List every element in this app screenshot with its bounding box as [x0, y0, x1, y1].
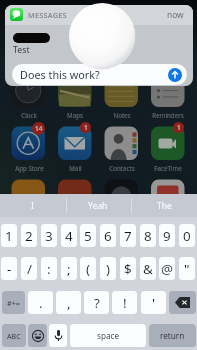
- staticText: Contacts: [109, 164, 135, 172]
- button[interactable]: &: [140, 257, 156, 280]
- button[interactable]: MESSAGES: [5, 5, 193, 86]
- button[interactable]: 4: [61, 224, 77, 247]
- staticText: 1: [177, 123, 181, 132]
- staticText: 3: [45, 227, 53, 245]
- staticText: now: [167, 9, 184, 20]
- button[interactable]: .: [28, 291, 53, 314]
- button[interactable]: 3: [41, 224, 57, 247]
- staticText: .: [39, 294, 43, 312]
- button[interactable]: Does this work?: [12, 64, 187, 85]
- staticText: 0: [183, 227, 191, 245]
- staticText: ,: [67, 294, 71, 312]
- button[interactable]: Backspace: [169, 291, 196, 314]
- staticText: #+=: [7, 298, 20, 308]
- button[interactable]: ": [179, 257, 195, 280]
- button[interactable]: Symbols: [2, 291, 25, 314]
- staticText: :: [47, 260, 51, 278]
- staticText: 14: [35, 124, 43, 133]
- button[interactable]: ABC: [2, 324, 26, 347]
- button[interactable]: Dictation: [49, 324, 67, 347]
- staticText: Test: [13, 44, 30, 56]
- staticText: Reminders: [152, 111, 184, 119]
- button[interactable]: ): [100, 257, 116, 280]
- staticText: 5: [84, 227, 92, 245]
- button[interactable]: 2: [21, 224, 37, 247]
- staticText: Notes: [113, 111, 131, 119]
- button[interactable]: (: [80, 257, 96, 280]
- button[interactable]: 5: [80, 224, 96, 247]
- button[interactable]: !: [112, 291, 137, 314]
- staticText: 1: [5, 227, 13, 245]
- staticText: 7: [124, 227, 132, 245]
- button[interactable]: Emoji: [28, 324, 47, 347]
- button[interactable]: Yeah: [65, 194, 131, 217]
- staticText: Mail: [69, 164, 82, 172]
- staticText: (: [86, 260, 91, 278]
- button[interactable]: The: [131, 194, 197, 217]
- staticText: @: [161, 260, 174, 278]
- staticText: 6: [104, 227, 112, 245]
- staticText: space: [97, 330, 120, 341]
- staticText: Clock: [21, 111, 37, 119]
- staticText: 2: [25, 227, 33, 245]
- button[interactable]: space: [70, 324, 146, 347]
- button[interactable]: -: [1, 257, 17, 280]
- staticText: MESSAGES: [28, 10, 67, 20]
- staticText: Yeah: [88, 200, 108, 212]
- staticText: 8: [144, 227, 152, 245]
- staticText: Does this work?: [20, 67, 100, 82]
- staticText: !: [123, 294, 127, 312]
- button[interactable]: Send: [168, 68, 182, 82]
- staticText: ?: [94, 294, 100, 312]
- button[interactable]: 6: [100, 224, 116, 247]
- staticText: ;: [67, 260, 71, 278]
- staticText: 1: [84, 123, 88, 132]
- button[interactable]: :: [41, 257, 57, 280]
- staticText: return: [160, 330, 185, 341]
- button[interactable]: 0: [179, 224, 195, 247]
- button[interactable]: ,: [56, 291, 81, 314]
- button[interactable]: 7: [120, 224, 136, 247]
- button[interactable]: ': [141, 291, 166, 314]
- staticText: Maps: [67, 111, 83, 119]
- button[interactable]: I: [0, 194, 65, 217]
- staticText: 4: [65, 227, 73, 245]
- button[interactable]: 1: [1, 224, 17, 247]
- button[interactable]: $: [120, 257, 136, 280]
- button[interactable]: /: [21, 257, 37, 280]
- button[interactable]: 9: [159, 224, 175, 247]
- staticText: ": [184, 260, 190, 278]
- staticText: $: [124, 260, 132, 278]
- staticText: /: [27, 260, 32, 278]
- staticText: App Store: [15, 164, 44, 172]
- staticText: &: [143, 260, 153, 278]
- staticText: FaceTime: [154, 164, 182, 172]
- button[interactable]: return: [149, 324, 196, 347]
- staticText: 9: [163, 227, 171, 245]
- staticText: ABC: [7, 331, 21, 341]
- button[interactable]: ?: [84, 291, 109, 314]
- staticText: I: [31, 200, 34, 212]
- button[interactable]: 8: [140, 224, 156, 247]
- staticText: -: [7, 260, 12, 278]
- staticText: ': [152, 294, 156, 312]
- button[interactable]: ;: [61, 257, 77, 280]
- staticText: The: [157, 200, 172, 212]
- staticText: ): [106, 260, 111, 278]
- button[interactable]: @: [159, 257, 175, 280]
